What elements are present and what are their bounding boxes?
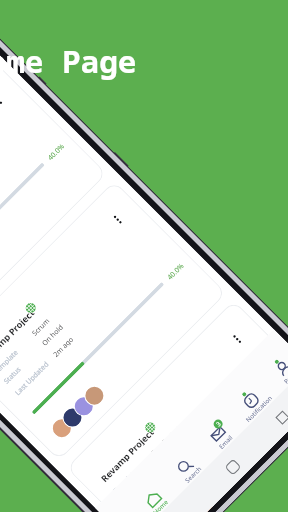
staticText: Home Page bbox=[0, 40, 137, 82]
button[interactable]: Revamp Project bbox=[0, 181, 227, 461]
staticText: 40.0% bbox=[165, 261, 185, 281]
staticText: Search bbox=[183, 464, 203, 484]
staticText: Template bbox=[111, 467, 139, 495]
button[interactable]: Revamp Project bbox=[66, 300, 288, 512]
button[interactable]: 3 bbox=[177, 394, 245, 461]
button[interactable]: More options bbox=[229, 331, 246, 348]
staticText: 3 bbox=[215, 420, 223, 428]
staticText: Revamp Project bbox=[98, 425, 156, 483]
button[interactable]: Home bbox=[225, 459, 241, 475]
staticText: 2m ago bbox=[171, 454, 194, 478]
button[interactable]: Recent apps bbox=[276, 411, 288, 424]
staticText: Revamp Project bbox=[0, 306, 36, 364]
staticText: 40.0% bbox=[46, 142, 65, 162]
staticText: On hold bbox=[40, 322, 65, 347]
staticText: Last Updated bbox=[133, 479, 169, 512]
staticText: 2m ago bbox=[51, 335, 74, 358]
button[interactable]: Notification bbox=[210, 360, 278, 428]
staticText: Email bbox=[217, 433, 234, 450]
button[interactable]: Build Project bbox=[0, 61, 107, 341]
button[interactable]: More options bbox=[109, 211, 126, 228]
staticText: Profile bbox=[282, 366, 288, 385]
button[interactable]: Home bbox=[112, 459, 180, 512]
staticText: Status bbox=[2, 365, 22, 385]
button[interactable]: More options bbox=[0, 92, 7, 109]
staticText: Home bbox=[151, 497, 169, 512]
staticText: On hold bbox=[159, 442, 184, 466]
staticText: 40.0% bbox=[285, 381, 288, 401]
button[interactable]: Profile bbox=[243, 329, 288, 396]
button[interactable]: Search bbox=[145, 426, 212, 494]
staticText: Last Updated bbox=[13, 360, 50, 396]
staticText: Template bbox=[0, 348, 19, 375]
staticText: Notification bbox=[244, 394, 273, 423]
staticText: Scrum bbox=[30, 316, 50, 337]
staticText: Bug Project bbox=[149, 424, 182, 456]
